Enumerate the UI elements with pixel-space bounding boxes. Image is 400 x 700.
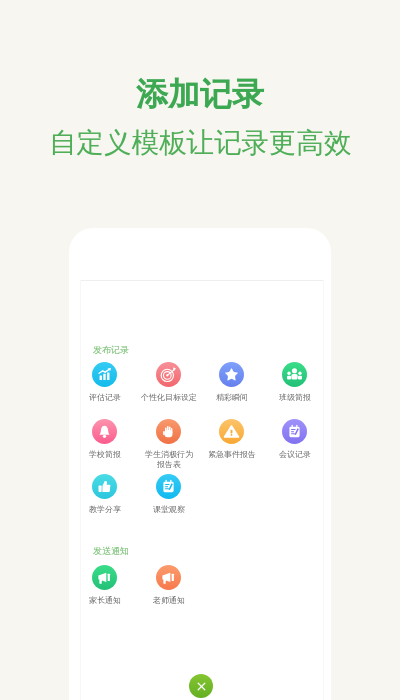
staticText: 评估记录 [89,392,121,402]
button[interactable]: 班级简报 [263,362,326,402]
staticText: 课堂观察 [153,504,185,514]
button[interactable]: 个性化目标设定 [137,362,200,402]
staticText: 班级简报 [279,392,311,402]
staticText: 学校简报 [89,449,121,459]
button[interactable]: 学生消极行为 报告表 [137,419,200,469]
staticText: 发送通知 [93,545,129,556]
button[interactable]: 紧急事件报告 [200,419,263,459]
staticText: 会议记录 [279,449,311,459]
staticText: 自定义模板让记录更高效 [49,126,352,161]
staticText: 学生消极行为 报告表 [145,449,193,469]
staticText: 老师通知 [153,595,185,605]
staticText: 个性化目标设定 [141,392,197,402]
button[interactable]: 课堂观察 [137,474,200,514]
button[interactable]: 会议记录 [263,419,326,459]
staticText: 紧急事件报告 [208,449,256,459]
staticText: 家长通知 [89,595,121,605]
staticText: 教学分享 [89,504,121,514]
button[interactable]: 精彩瞬间 [200,362,263,402]
staticText: 发布记录 [93,344,129,355]
staticText: 添加记录 [136,74,264,114]
button[interactable]: 关闭 [189,674,213,698]
button[interactable]: 教学分享 [73,474,136,514]
button[interactable]: 家长通知 [73,565,136,605]
button[interactable]: 学校简报 [73,419,136,459]
staticText: 精彩瞬间 [216,392,248,402]
button[interactable]: 老师通知 [137,565,200,605]
button[interactable]: 评估记录 [73,362,136,402]
